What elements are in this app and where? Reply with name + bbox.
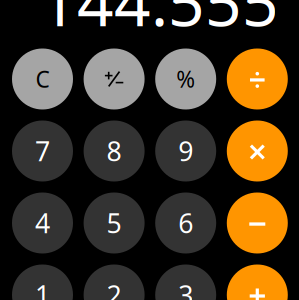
- button[interactable]: 6: [155, 192, 216, 253]
- button[interactable]: 8: [84, 120, 145, 181]
- button[interactable]: 5: [84, 192, 145, 253]
- staticText: C: [35, 64, 49, 94]
- button[interactable]: Multiply: [227, 120, 288, 181]
- staticText: 9: [178, 133, 193, 169]
- button[interactable]: 7: [12, 120, 73, 181]
- staticText: 7: [35, 133, 50, 169]
- staticText: 4: [35, 205, 50, 241]
- button[interactable]: Divide: [227, 48, 288, 109]
- staticText: 2: [107, 277, 122, 300]
- button[interactable]: 9: [155, 120, 216, 181]
- button[interactable]: Percent: [155, 48, 216, 109]
- button[interactable]: 4: [12, 192, 73, 253]
- button[interactable]: 3: [155, 264, 216, 300]
- button[interactable]: Plus: [227, 264, 288, 300]
- staticText: %: [176, 64, 195, 94]
- button[interactable]: 2: [84, 264, 145, 300]
- staticText: 144.555: [40, 0, 279, 44]
- staticText: 3: [178, 277, 193, 300]
- button[interactable]: Clear: [12, 48, 73, 109]
- button[interactable]: Plus Minus: [84, 48, 145, 109]
- staticText: 6: [178, 205, 193, 241]
- staticText: 5: [107, 205, 122, 241]
- staticText: 1: [35, 277, 50, 300]
- button[interactable]: Minus: [227, 192, 288, 253]
- staticText: 8: [107, 133, 122, 169]
- button[interactable]: 1: [12, 264, 73, 300]
